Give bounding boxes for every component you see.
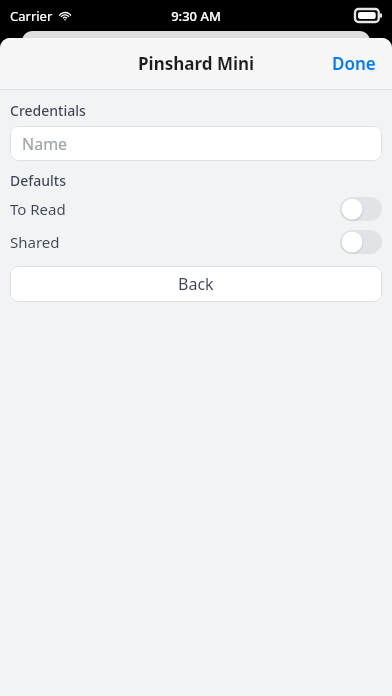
staticText: Carrier [10, 7, 53, 25]
staticText: Defaults [10, 171, 66, 190]
staticText: Back [178, 273, 214, 295]
button[interactable]: Back [10, 266, 382, 302]
other: Toggle [340, 230, 382, 254]
staticText: Credentials [10, 101, 86, 120]
staticText: Pinshard Mini [138, 52, 255, 75]
other: Toggle [340, 197, 382, 221]
button[interactable]: To Read [0, 192, 392, 225]
staticText: Shared [10, 232, 60, 252]
staticText: To Read [10, 199, 66, 219]
staticText: 9:30 AM [171, 7, 221, 25]
button[interactable]: Done [316, 42, 392, 85]
staticText: Done [332, 52, 376, 75]
button[interactable]: Shared [0, 225, 392, 258]
button[interactable]: Name [10, 126, 382, 161]
staticText: Name [22, 133, 68, 155]
